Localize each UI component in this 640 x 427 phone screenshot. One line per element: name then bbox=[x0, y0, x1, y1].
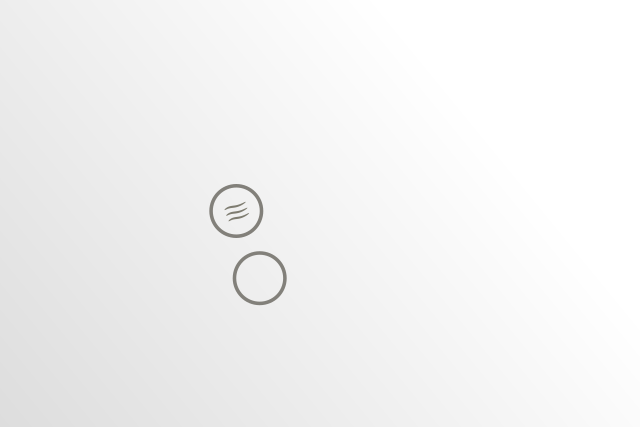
button[interactable]: Power bbox=[233, 251, 287, 305]
button[interactable]: Air flow bbox=[209, 184, 263, 238]
